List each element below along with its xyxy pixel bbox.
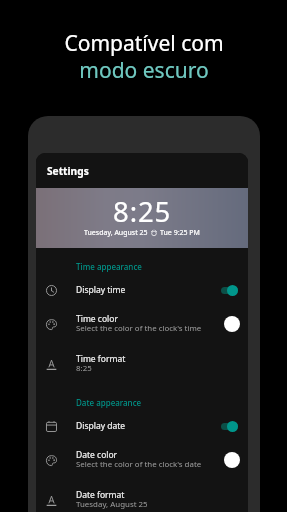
button[interactable]: Settings (36, 153, 248, 188)
staticText: Date color (76, 449, 118, 461)
staticText: 8:25 (113, 193, 172, 230)
button[interactable]: Time color (36, 304, 248, 344)
staticText: Compatível com (64, 29, 224, 58)
staticText: Time appearance (76, 261, 248, 272)
button[interactable]: Toggle (221, 284, 238, 296)
staticText: Tuesday, August 25 (76, 499, 148, 510)
staticText: Select the color of the clock's date (76, 459, 202, 470)
staticText: Tue 9:25 PM (160, 228, 200, 238)
staticText: Time color (76, 313, 118, 325)
staticText: modo escuro (79, 56, 209, 85)
staticText: Date appearance (76, 397, 248, 408)
button[interactable]: Date format (36, 480, 248, 512)
staticText: Time format (76, 353, 126, 365)
staticText: Date format (76, 489, 125, 501)
staticText: Display time (76, 284, 126, 296)
staticText: Settings (47, 164, 89, 178)
button[interactable]: Pick color (224, 452, 240, 468)
button[interactable]: Display time (36, 276, 248, 304)
button[interactable]: Pick color (224, 316, 240, 332)
button[interactable]: Time format (36, 344, 248, 384)
button[interactable]: Display date (36, 412, 248, 440)
staticText: 8:25 (76, 363, 92, 374)
button[interactable]: Date color (36, 440, 248, 480)
button[interactable]: Toggle (221, 420, 238, 432)
staticText: Tuesday, August 25 (84, 228, 148, 238)
staticText: Select the color of the clock's time (76, 323, 202, 334)
staticText: Display date (76, 420, 126, 432)
